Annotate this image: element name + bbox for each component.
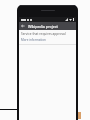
staticText: More information [21, 38, 46, 42]
button[interactable]: Service that requires approval [19, 30, 76, 44]
button[interactable]: Navigate up [19, 22, 27, 30]
staticText: Wikipedia project [28, 24, 58, 29]
staticText: Service that requires approval [21, 32, 66, 36]
